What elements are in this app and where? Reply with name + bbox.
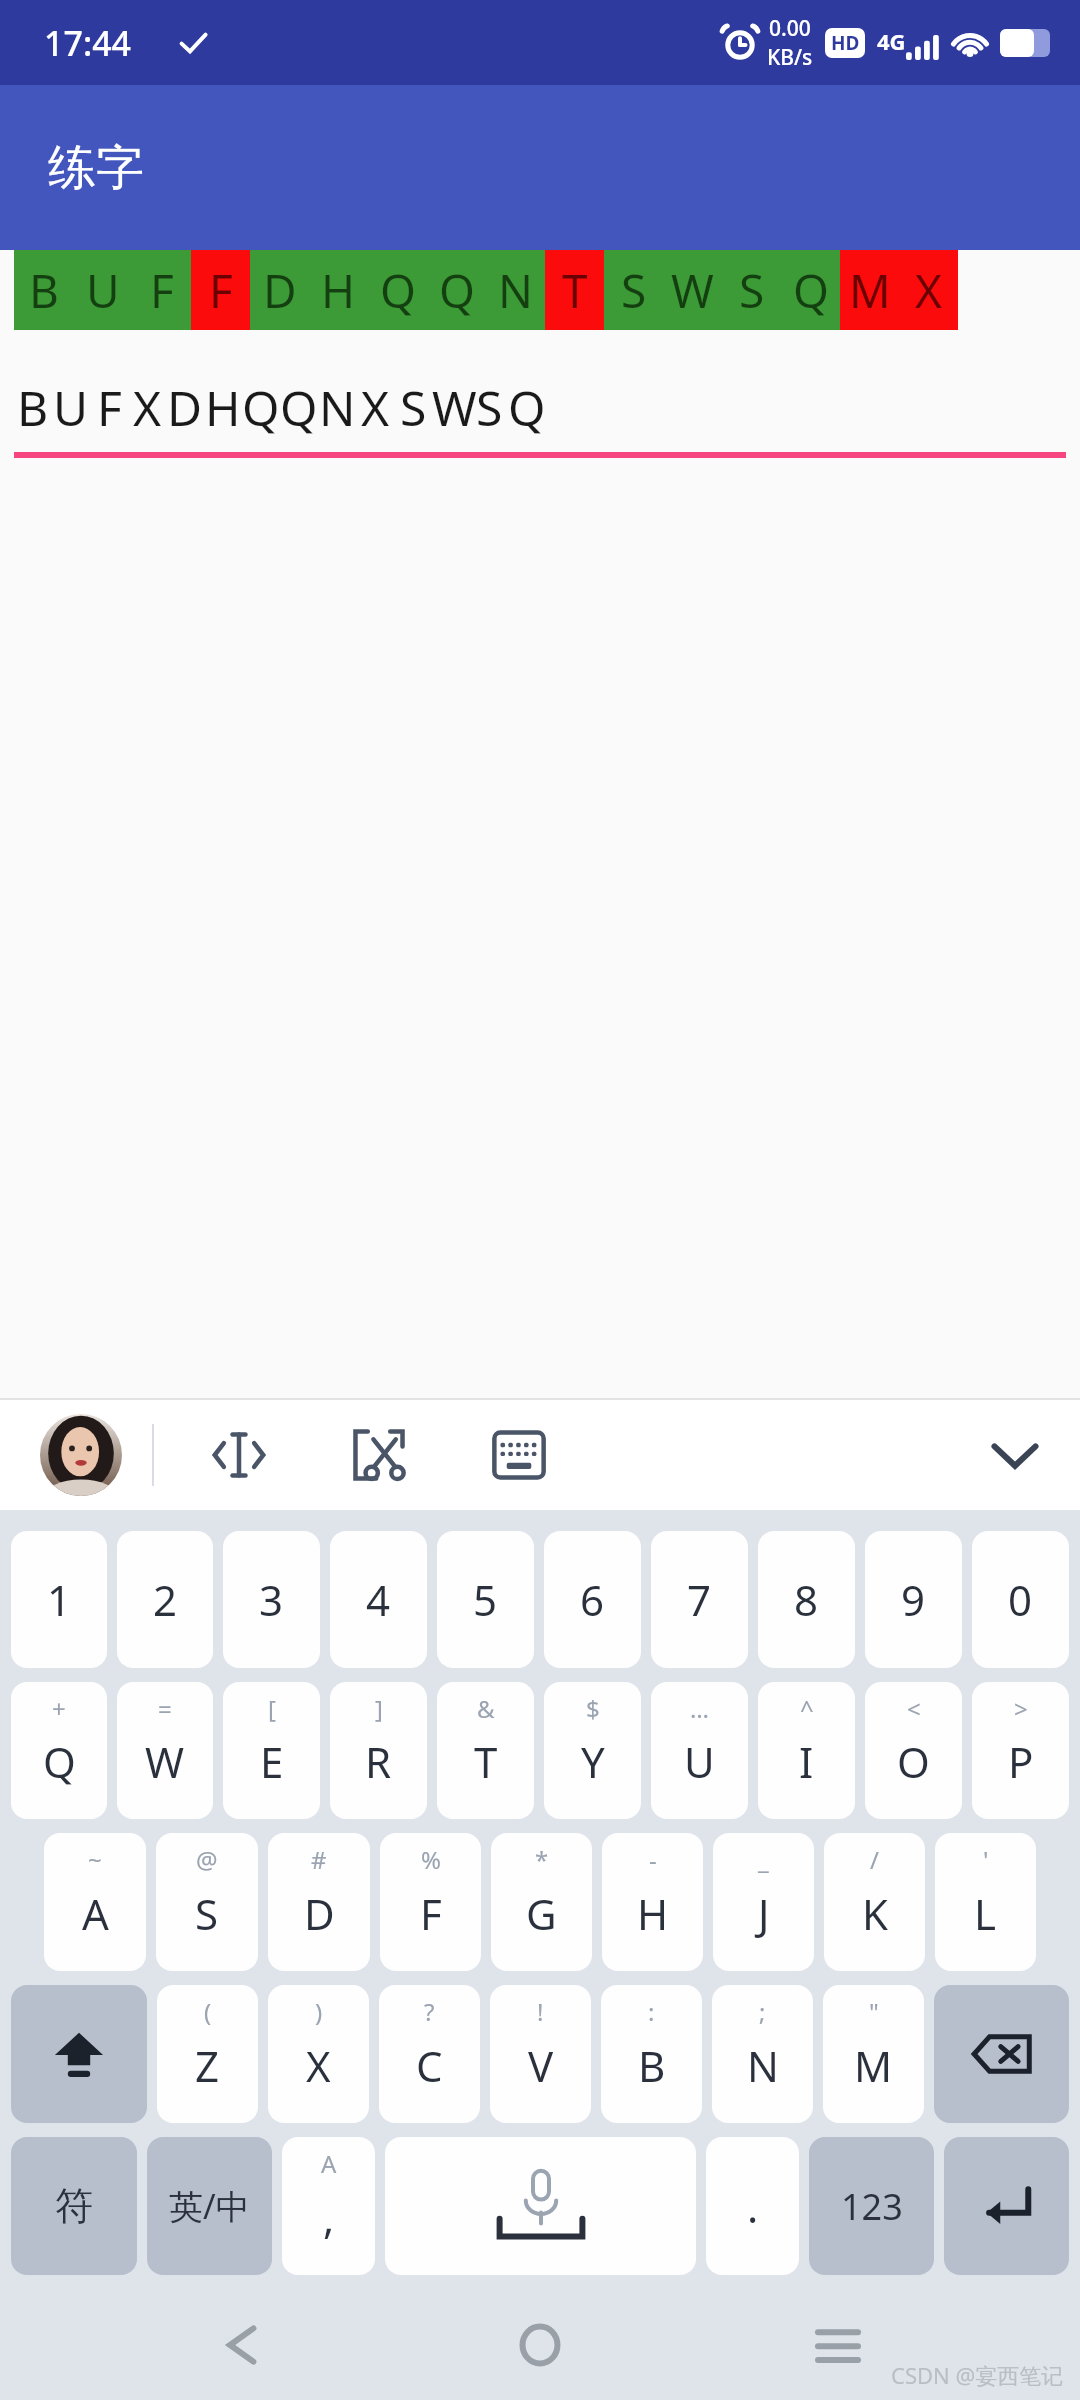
button[interactable]: .: [706, 2137, 799, 2275]
staticText: !: [537, 1995, 544, 2028]
button[interactable]: A: [282, 2137, 375, 2275]
staticText: ?: [424, 1995, 435, 2028]
button[interactable]: Account: [40, 1414, 122, 1496]
staticText: B: [17, 375, 49, 440]
staticText: ]: [375, 1692, 383, 1725]
button[interactable]: <: [865, 1682, 962, 1819]
button[interactable]: Space: [385, 2137, 696, 2275]
staticText: ): [315, 1995, 323, 2028]
button[interactable]: ': [935, 1833, 1036, 1971]
button[interactable]: Keyboard settings: [482, 1418, 556, 1492]
button[interactable]: +: [11, 1682, 107, 1819]
button[interactable]: 1: [11, 1531, 107, 1668]
staticText: B: [638, 2037, 666, 2094]
staticText: U: [53, 375, 89, 440]
staticText: [: [268, 1692, 276, 1725]
staticText: =: [158, 1692, 172, 1725]
button[interactable]: Back: [188, 2290, 298, 2400]
button[interactable]: Home: [485, 2290, 595, 2400]
staticText: 0.00: [769, 14, 811, 43]
staticText: <: [907, 1692, 921, 1725]
staticText: 练字: [48, 138, 144, 198]
button[interactable]: 0: [972, 1531, 1069, 1668]
button[interactable]: Enter: [944, 2137, 1069, 2275]
button[interactable]: *: [491, 1833, 592, 1971]
staticText: F: [420, 1885, 442, 1942]
button[interactable]: Recents: [783, 2290, 893, 2400]
button[interactable]: $: [544, 1682, 641, 1819]
button[interactable]: 6: [544, 1531, 641, 1668]
staticText: M: [854, 2037, 893, 2094]
button[interactable]: 9: [865, 1531, 962, 1668]
staticText: P: [1008, 1733, 1034, 1790]
button[interactable]: ~: [44, 1833, 146, 1971]
button[interactable]: 8: [758, 1531, 855, 1668]
button[interactable]: !: [490, 1985, 591, 2123]
staticText: V: [528, 2037, 554, 2094]
staticText: 英/中: [169, 2183, 250, 2229]
staticText: 1: [47, 1571, 72, 1628]
button[interactable]: :: [601, 1985, 702, 2123]
staticText: 8: [794, 1571, 819, 1628]
button[interactable]: Clipboard: [342, 1418, 416, 1492]
button[interactable]: ": [823, 1985, 924, 2123]
staticText: 6: [580, 1571, 605, 1628]
button[interactable]: 3: [223, 1531, 320, 1668]
button[interactable]: #: [268, 1833, 370, 1971]
staticText: 5: [473, 1571, 498, 1628]
button[interactable]: 4: [330, 1531, 427, 1668]
button[interactable]: [: [223, 1682, 320, 1819]
button[interactable]: …: [651, 1682, 748, 1819]
button[interactable]: 2: [117, 1531, 213, 1668]
staticText: Q: [380, 259, 416, 322]
button[interactable]: Move cursor: [202, 1418, 276, 1492]
staticText: ~: [88, 1843, 102, 1876]
staticText: X: [915, 259, 942, 322]
button[interactable]: &: [437, 1682, 534, 1819]
staticText: K: [862, 1885, 888, 1942]
button[interactable]: Shift: [11, 1985, 147, 2123]
staticText: &: [477, 1692, 495, 1725]
button[interactable]: 符: [11, 2137, 137, 2275]
button[interactable]: 123: [809, 2137, 934, 2275]
staticText: U: [684, 1733, 715, 1790]
button[interactable]: 7: [651, 1531, 748, 1668]
staticText: 3: [259, 1571, 284, 1628]
button[interactable]: ;: [712, 1985, 813, 2123]
button[interactable]: Backspace: [934, 1985, 1069, 2123]
staticText: .: [747, 2178, 759, 2235]
staticText: ': [983, 1843, 989, 1876]
button[interactable]: @: [156, 1833, 258, 1971]
staticText: H: [205, 375, 241, 440]
button[interactable]: (: [157, 1985, 258, 2123]
staticText: +: [52, 1692, 66, 1725]
staticText: Y: [581, 1733, 605, 1790]
staticText: _: [758, 1843, 769, 1876]
button[interactable]: 英/中: [147, 2137, 272, 2275]
staticText: Q: [280, 375, 318, 440]
button[interactable]: ]: [330, 1682, 427, 1819]
button[interactable]: 5: [437, 1531, 534, 1668]
staticText: N: [747, 2037, 779, 2094]
button[interactable]: _: [713, 1833, 814, 1971]
staticText: Q: [793, 259, 829, 322]
button[interactable]: ?: [379, 1985, 480, 2123]
staticText: X: [133, 375, 162, 440]
staticText: L: [974, 1885, 997, 1942]
staticText: ;: [759, 1995, 766, 2028]
button[interactable]: /: [824, 1833, 925, 1971]
staticText: N: [498, 259, 533, 322]
button[interactable]: %: [380, 1833, 481, 1971]
staticText: 9: [901, 1571, 926, 1628]
button[interactable]: -: [602, 1833, 703, 1971]
staticText: J: [758, 1885, 770, 1942]
staticText: G: [526, 1885, 557, 1942]
button[interactable]: =: [117, 1682, 213, 1819]
staticText: D: [304, 1885, 335, 1942]
staticText: Q: [439, 259, 475, 322]
button[interactable]: Hide keyboard: [970, 1410, 1060, 1500]
button[interactable]: ^: [758, 1682, 855, 1819]
staticText: W: [671, 259, 714, 322]
button[interactable]: >: [972, 1682, 1069, 1819]
button[interactable]: ): [268, 1985, 369, 2123]
